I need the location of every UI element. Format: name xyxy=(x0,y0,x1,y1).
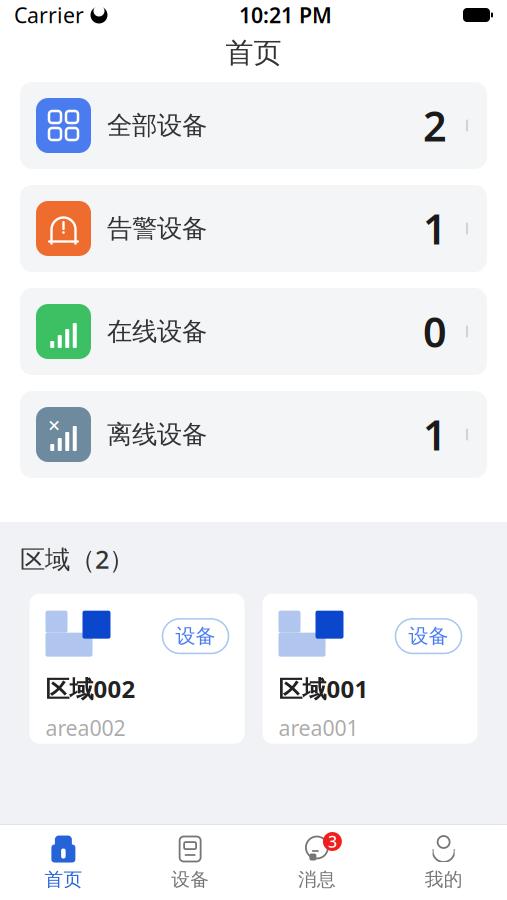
staticText: 告警设备 xyxy=(107,213,207,244)
button[interactable]: 3 xyxy=(253,834,380,891)
staticText: area001 xyxy=(278,713,358,742)
button[interactable]: 设备 xyxy=(262,594,477,744)
button[interactable]: 全部设备 xyxy=(20,82,487,169)
button[interactable]: 告警设备 xyxy=(20,185,487,272)
staticText: 离线设备 xyxy=(107,419,207,450)
button[interactable]: 我的 xyxy=(380,834,507,891)
staticText: 在线设备 xyxy=(107,316,207,347)
staticText: 2 xyxy=(423,98,447,153)
button[interactable]: 设备 xyxy=(29,594,244,744)
staticText: × xyxy=(48,411,60,439)
staticText: 我的 xyxy=(425,868,463,891)
button[interactable]: 首页 xyxy=(0,834,127,891)
staticText: 首页 xyxy=(44,868,82,891)
staticText: 区域002 xyxy=(45,673,135,704)
staticText: 1 xyxy=(423,407,447,462)
button[interactable]: × xyxy=(20,391,487,478)
staticText: 10:21 PM xyxy=(239,1,332,29)
staticText: 首页 xyxy=(225,36,281,70)
staticText: 0 xyxy=(423,304,447,359)
staticText: 全部设备 xyxy=(107,110,207,141)
button[interactable]: 在线设备 xyxy=(20,288,487,375)
staticText: 区域（2） xyxy=(20,542,134,576)
staticText: area002 xyxy=(45,713,125,742)
staticText: 1 xyxy=(423,201,447,256)
staticText: 设备 xyxy=(408,624,448,648)
staticText: 设备 xyxy=(171,868,209,891)
button[interactable]: 设备 xyxy=(127,834,254,891)
staticText: 设备 xyxy=(175,624,215,648)
staticText: 区域001 xyxy=(278,673,368,704)
staticText: Carrier xyxy=(14,1,84,29)
staticText: 3 xyxy=(328,831,337,852)
staticText: 消息 xyxy=(298,868,336,891)
